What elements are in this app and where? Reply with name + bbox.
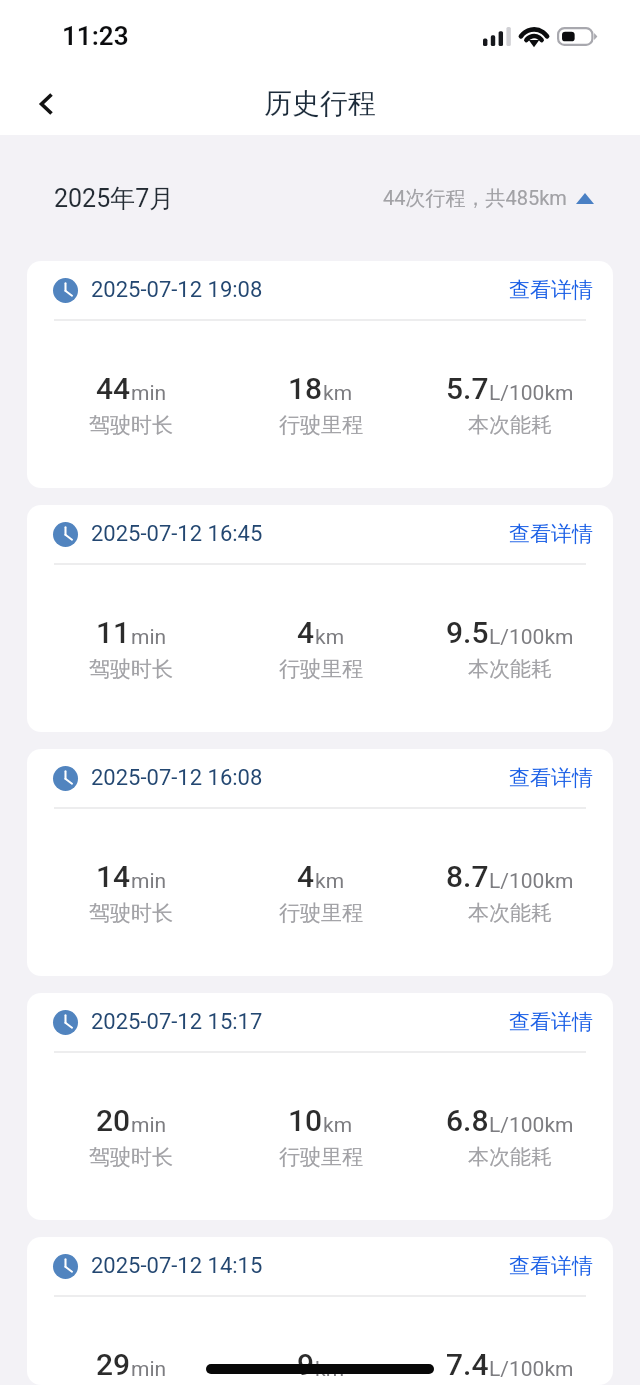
staticText: 29: [96, 1347, 131, 1382]
staticText: km: [323, 1113, 353, 1138]
staticText: L/100km: [489, 1357, 574, 1382]
button[interactable]: Back: [0, 72, 92, 135]
staticText: 6.8: [446, 1103, 489, 1138]
staticText: 本次能耗: [468, 656, 552, 682]
staticText: 查看详情: [509, 277, 593, 303]
staticText: 5.7: [446, 371, 489, 406]
button[interactable]: 查看详情: [493, 749, 613, 807]
button[interactable]: 2025-07-12 15:17: [27, 993, 613, 1220]
staticText: 7.4: [446, 1347, 489, 1382]
staticText: 查看详情: [509, 1009, 593, 1035]
staticText: 2025-07-12 16:45: [91, 521, 263, 547]
staticText: 2025-07-12 14:15: [91, 1253, 263, 1279]
staticText: L/100km: [489, 381, 574, 406]
button[interactable]: 2025-07-12 16:45: [27, 505, 613, 732]
button[interactable]: 查看详情: [493, 261, 613, 319]
button[interactable]: 44次行程，共485km: [371, 176, 640, 221]
staticText: 历史行程: [264, 86, 376, 121]
staticText: 行驶里程: [279, 900, 363, 926]
staticText: min: [131, 625, 167, 650]
staticText: 行驶里程: [279, 1144, 363, 1170]
staticText: km: [315, 625, 345, 650]
staticText: 2025年7月: [54, 183, 175, 214]
button[interactable]: 查看详情: [493, 505, 613, 563]
staticText: 4: [297, 615, 315, 650]
staticText: 驾驶时长: [89, 656, 173, 682]
staticText: 11:23: [62, 21, 129, 51]
staticText: 2025-07-12 19:08: [91, 277, 263, 303]
staticText: min: [131, 381, 167, 406]
staticText: 2025-07-12 16:08: [91, 765, 263, 791]
staticText: 8.7: [446, 859, 489, 894]
staticText: 驾驶时长: [89, 412, 173, 438]
staticText: 行驶里程: [279, 656, 363, 682]
staticText: 20: [96, 1103, 131, 1138]
staticText: km: [323, 381, 353, 406]
staticText: 44次行程，共485km: [383, 186, 567, 211]
staticText: 本次能耗: [468, 900, 552, 926]
staticText: 本次能耗: [468, 1144, 552, 1170]
staticText: 14: [96, 859, 131, 894]
staticText: 2025-07-12 15:17: [91, 1009, 263, 1035]
staticText: 9: [297, 1347, 315, 1382]
staticText: 查看详情: [509, 1253, 593, 1279]
staticText: 4: [297, 859, 315, 894]
staticText: min: [131, 1357, 167, 1382]
button[interactable]: 2025-07-12 16:08: [27, 749, 613, 976]
staticText: min: [131, 869, 167, 894]
staticText: L/100km: [489, 869, 574, 894]
button[interactable]: 查看详情: [493, 1237, 613, 1295]
staticText: L/100km: [489, 1113, 574, 1138]
button[interactable]: 2025-07-12 19:08: [27, 261, 613, 488]
staticText: 查看详情: [509, 765, 593, 791]
staticText: 18: [288, 371, 323, 406]
staticText: km: [315, 1357, 345, 1382]
staticText: 驾驶时长: [89, 900, 173, 926]
staticText: 10: [288, 1103, 323, 1138]
staticText: 9.5: [446, 615, 489, 650]
staticText: 44: [96, 371, 131, 406]
staticText: km: [315, 869, 345, 894]
button[interactable]: 2025-07-12 14:15: [27, 1237, 613, 1385]
button[interactable]: 查看详情: [493, 993, 613, 1051]
staticText: 驾驶时长: [89, 1144, 173, 1170]
staticText: L/100km: [489, 625, 574, 650]
staticText: min: [131, 1113, 167, 1138]
staticText: 本次能耗: [468, 412, 552, 438]
staticText: 行驶里程: [279, 412, 363, 438]
staticText: 查看详情: [509, 521, 593, 547]
staticText: 11: [96, 615, 131, 650]
